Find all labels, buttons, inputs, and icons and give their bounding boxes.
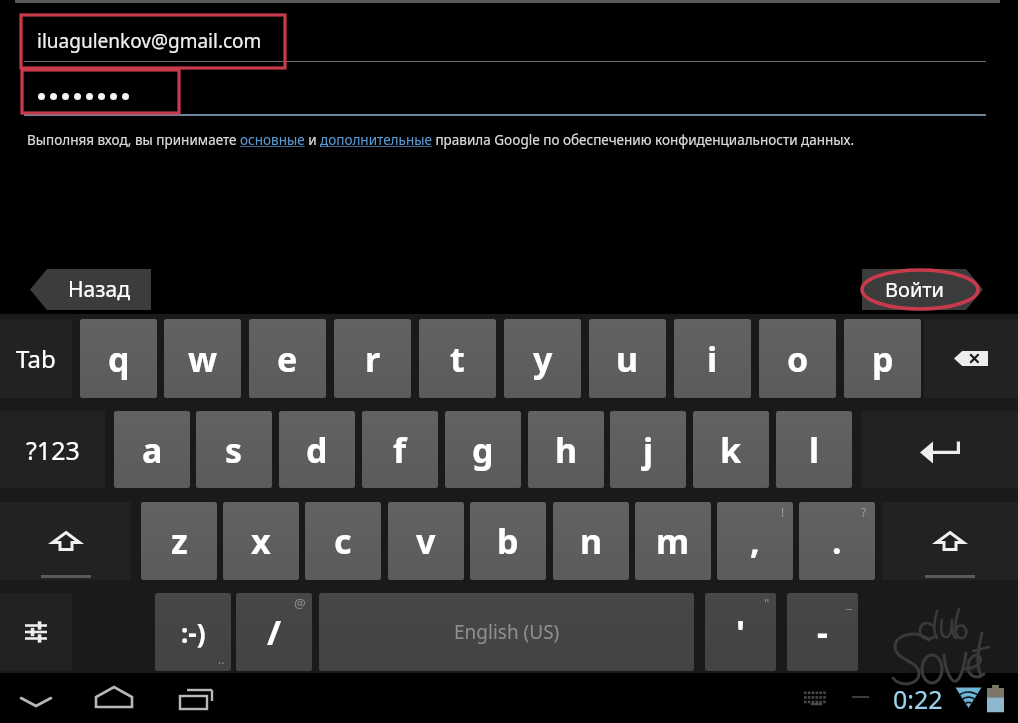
button[interactable]: , (717, 502, 793, 580)
button[interactable]: ?123 (0, 411, 105, 488)
button[interactable]: e (249, 319, 326, 398)
staticText: English (US) (454, 619, 560, 645)
button[interactable]: k (693, 411, 769, 488)
staticText: Tab (16, 342, 56, 375)
button[interactable]: English (US) (319, 593, 694, 671)
staticText: Войти (885, 276, 945, 303)
other: Keyboard settings (25, 623, 47, 641)
staticText: g (472, 427, 494, 473)
button[interactable]: m (635, 502, 711, 580)
button[interactable] (22, 70, 179, 113)
button[interactable]: Назад (30, 269, 151, 310)
other: Backspace (954, 351, 988, 366)
staticText: h (555, 427, 578, 473)
button[interactable]: :-) (155, 593, 231, 671)
staticText: w (188, 336, 218, 382)
button[interactable]: o (759, 319, 836, 398)
button[interactable]: u (589, 319, 666, 398)
button[interactable]: t (419, 319, 496, 398)
button[interactable]: n (553, 502, 629, 580)
staticText: c (334, 518, 352, 564)
staticText: s (225, 427, 243, 473)
button[interactable]: Войти (862, 269, 983, 310)
button[interactable]: f (362, 411, 438, 488)
button[interactable]: / (236, 593, 312, 671)
staticText: iluagulenkov@gmail.com (37, 28, 262, 54)
staticText: z (171, 518, 188, 564)
other: Shift (882, 502, 1018, 580)
staticText: m (656, 518, 690, 564)
staticText: ' (736, 609, 746, 655)
staticText: x (251, 518, 271, 564)
staticText: _ (846, 594, 852, 612)
staticText: f (393, 427, 407, 473)
staticText: 0:22 (893, 682, 943, 716)
button[interactable]: Hide keyboard (6, 674, 66, 718)
staticText: n (580, 518, 603, 564)
button[interactable]: y (504, 319, 581, 398)
button[interactable]: a (114, 411, 190, 488)
button[interactable]: p (844, 319, 921, 398)
button[interactable]: r (334, 319, 411, 398)
button[interactable]: s (196, 411, 272, 488)
staticText: p (872, 336, 894, 382)
button[interactable]: Shift (0, 502, 131, 580)
button[interactable]: l (776, 411, 852, 488)
staticText: Назад (68, 275, 130, 304)
staticText: ?123 (26, 433, 80, 467)
button[interactable]: Recent apps (165, 676, 225, 720)
button[interactable]: Shift (882, 502, 1018, 580)
staticText: e (277, 336, 298, 382)
staticText: q (108, 336, 130, 382)
staticText: a (142, 427, 163, 473)
button[interactable]: w (164, 319, 241, 398)
staticText: y (533, 336, 553, 382)
button[interactable] (21, 15, 285, 68)
staticText: r (365, 336, 381, 382)
button[interactable]: . (799, 502, 875, 580)
button[interactable]: Keyboard settings (0, 593, 72, 671)
staticText: :-) (181, 615, 206, 650)
button[interactable]: Home (84, 676, 144, 720)
button[interactable]: - (787, 593, 858, 671)
button[interactable]: b (470, 502, 546, 580)
button[interactable]: Backspace (924, 319, 1018, 398)
staticText: ! (781, 504, 785, 520)
other: Shift (0, 502, 131, 580)
button[interactable]: Choose input method (801, 688, 832, 707)
button[interactable]: j (610, 411, 686, 488)
button[interactable]: c (305, 502, 381, 580)
button[interactable]: ' (705, 593, 776, 671)
staticText: o (787, 336, 809, 382)
staticText: b (497, 518, 519, 564)
staticText: @ (294, 594, 306, 612)
staticText: u (616, 336, 639, 382)
staticText: j (643, 427, 654, 473)
button[interactable]: d (279, 411, 355, 488)
staticText: - (817, 609, 828, 655)
staticText: t (450, 336, 465, 382)
staticText: v (416, 518, 436, 564)
button[interactable]: x (223, 502, 299, 580)
staticText: .. (218, 651, 225, 667)
button[interactable]: Enter (862, 411, 1018, 488)
other: Enter (920, 440, 960, 460)
staticText: . (832, 518, 842, 564)
staticText: l (809, 427, 820, 473)
button[interactable]: i (674, 319, 751, 398)
staticText: d (306, 427, 328, 473)
staticText: " (764, 594, 770, 612)
button[interactable]: v (388, 502, 464, 580)
button[interactable]: g (445, 411, 521, 488)
staticText: ? (861, 504, 867, 520)
button[interactable]: h (528, 411, 604, 488)
button[interactable]: Tab (0, 319, 72, 398)
staticText: k (720, 427, 742, 473)
staticText: / (267, 609, 282, 655)
staticText: i (707, 336, 718, 382)
button[interactable]: z (141, 502, 217, 580)
button[interactable]: q (80, 319, 157, 398)
staticText: , (750, 518, 760, 564)
staticText: Выполняя вход, вы принимаете основные и … (27, 131, 855, 149)
